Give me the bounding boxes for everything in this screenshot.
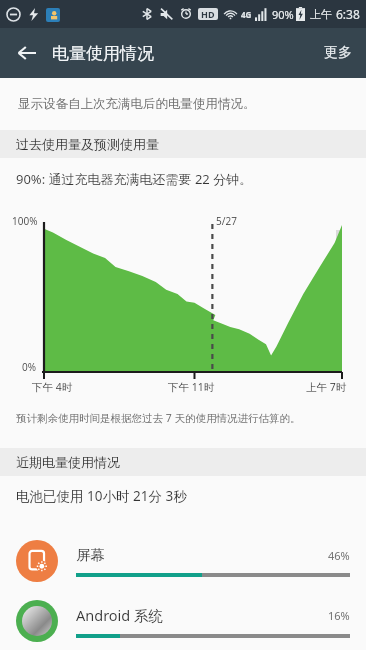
staticText: 6:38 [336,6,360,22]
button[interactable]: 屏幕 [0,530,366,592]
staticText: 更多 [324,44,352,62]
staticText: 预计剩余使用时间是根据您过去 7 天的使用情况进行估算的。 [16,411,301,425]
button[interactable]: 返回 [6,32,48,74]
staticText: HD [201,8,215,20]
staticText: 上午 7时 [306,380,347,394]
staticText: 上午 [310,7,332,21]
staticText: Android 系统 [76,605,328,625]
staticText: 90% [272,7,294,22]
staticText: 46% [328,548,350,563]
staticText: 100% [12,214,38,228]
staticText: 下午 11时 [168,380,215,394]
staticText: 下午 4时 [32,380,73,394]
button[interactable]: Android 系统 [0,592,366,650]
staticText: 90%: 通过充电器充满电还需要 22 分钟。 [16,170,253,188]
button[interactable]: 更多 [310,34,366,72]
staticText: 0% [22,360,37,374]
staticText: 4G [241,9,252,20]
staticText: 5/27 [216,214,237,228]
staticText: 屏幕 [76,546,328,564]
staticText: 16% [328,608,350,623]
staticText: 过去使用量及预测使用量 [16,136,159,152]
staticText: 电池已使用 10小时 21分 3秒 [16,487,187,505]
staticText: 电量使用情况 [52,43,154,64]
staticText: 近期电量使用情况 [16,454,120,470]
staticText: 显示设备自上次充满电后的电量使用情况。 [18,96,256,112]
